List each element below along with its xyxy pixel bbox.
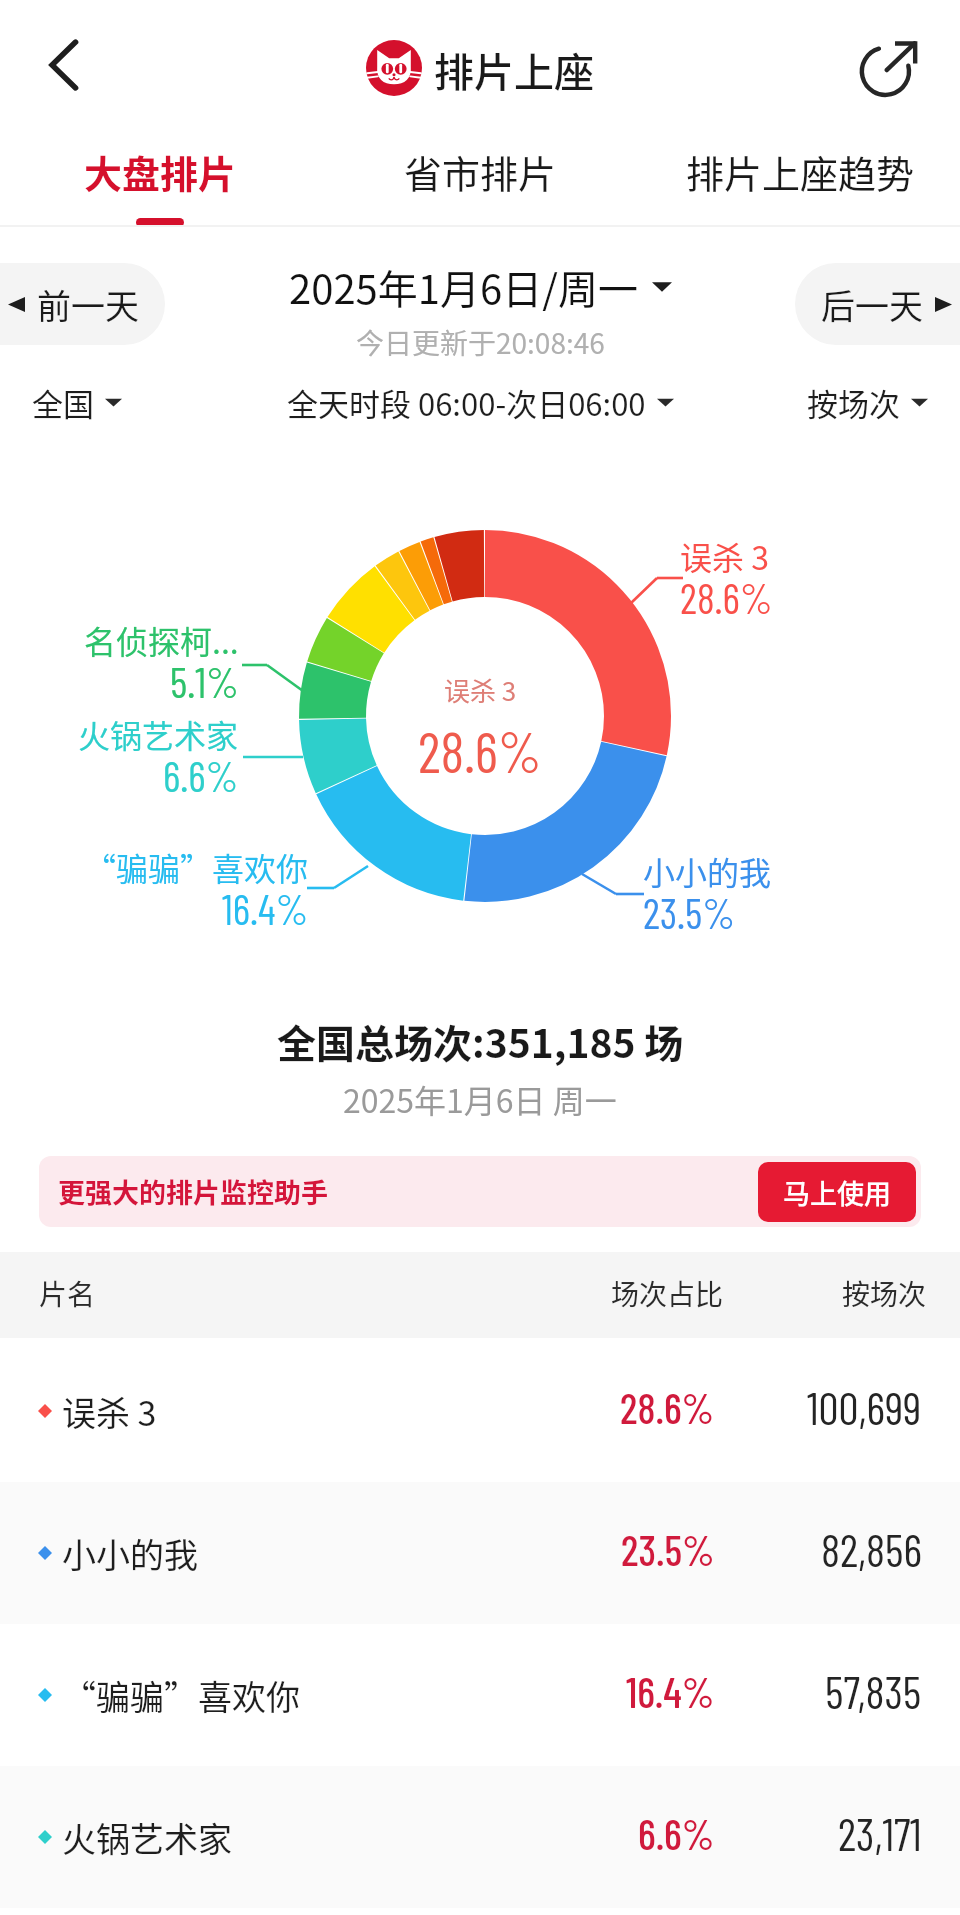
staticText: 排片上座趋势 <box>686 144 915 199</box>
button[interactable]: 更强大的排片监控助手 <box>39 1156 921 1227</box>
staticText: 全天时段 06:00-次日06:00 <box>287 380 646 425</box>
button[interactable]: 2025年1月6日/周一 <box>289 258 672 316</box>
staticText: 23.5% <box>643 887 735 937</box>
staticText: 16.4% <box>626 1666 715 1716</box>
button[interactable]: 火锅艺术家 <box>0 1766 960 1908</box>
staticText: 误杀 3 <box>680 533 769 579</box>
staticText: 全国 <box>32 380 94 425</box>
staticText: 按场次 <box>842 1273 927 1314</box>
staticText: 28.6% <box>680 572 773 622</box>
staticText: 省市排片 <box>404 144 557 199</box>
staticText: 更强大的排片监控助手 <box>58 1172 328 1211</box>
staticText: 57,835 <box>825 1664 922 1718</box>
button[interactable]: “骗骗”喜欢你 <box>0 1624 960 1766</box>
staticText: 名侦探柯... <box>84 617 239 663</box>
staticText: 23.5% <box>621 1524 715 1574</box>
button[interactable]: 马上使用 <box>758 1162 916 1222</box>
staticText: “骗骗”喜欢你 <box>84 844 309 890</box>
button[interactable]: 大盘排片 <box>0 130 320 228</box>
staticText: 误杀 3 <box>444 671 517 709</box>
button[interactable]: 按场次 <box>807 380 928 425</box>
staticText: 2025年1月6日 周一 <box>343 1076 617 1122</box>
staticText: 片名 <box>39 1273 96 1314</box>
staticText: 排片上座 <box>434 41 594 99</box>
staticText: 6.6% <box>638 1808 715 1858</box>
staticText: 前一天 <box>37 280 139 329</box>
staticText: 16.4% <box>222 883 309 933</box>
staticText: 全国总场次:351,185 场 <box>277 1013 684 1069</box>
button[interactable]: 小小的我 <box>0 1482 960 1624</box>
button[interactable]: 排片上座趋势 <box>640 130 960 228</box>
staticText: 大盘排片 <box>84 144 237 199</box>
staticText: 火锅艺术家 <box>78 711 239 757</box>
staticText: 误杀 3 <box>62 1387 157 1436</box>
staticText: 火锅艺术家 <box>62 1813 232 1862</box>
staticText: 场次占比 <box>611 1273 724 1314</box>
staticText: “骗骗”喜欢你 <box>62 1671 300 1720</box>
staticText: 今日更新于20:08:46 <box>356 322 605 363</box>
button[interactable]: Share <box>860 36 922 98</box>
staticText: 28.6% <box>418 717 542 784</box>
staticText: 后一天 <box>821 280 923 329</box>
button[interactable]: 全国 <box>32 380 122 425</box>
staticText: 马上使用 <box>783 1173 891 1212</box>
staticText: 5.1% <box>170 656 239 706</box>
staticText: 按场次 <box>807 380 900 425</box>
button[interactable]: Back <box>30 34 106 96</box>
staticText: 28.6% <box>620 1382 715 1432</box>
staticText: 100,699 <box>807 1380 922 1434</box>
button[interactable]: 后一天 <box>795 263 960 345</box>
staticText: 小小的我 <box>643 848 772 894</box>
staticText: 2025年1月6日/周一 <box>289 258 638 316</box>
staticText: 小小的我 <box>62 1529 198 1578</box>
button[interactable]: 误杀 3 <box>0 1340 960 1482</box>
staticText: 23,171 <box>838 1806 922 1860</box>
button[interactable]: 前一天 <box>0 263 165 345</box>
button[interactable]: 全天时段 06:00-次日06:00 <box>287 380 674 425</box>
button[interactable]: 省市排片 <box>320 130 640 228</box>
staticText: 82,856 <box>821 1522 922 1576</box>
staticText: 6.6% <box>163 750 239 800</box>
